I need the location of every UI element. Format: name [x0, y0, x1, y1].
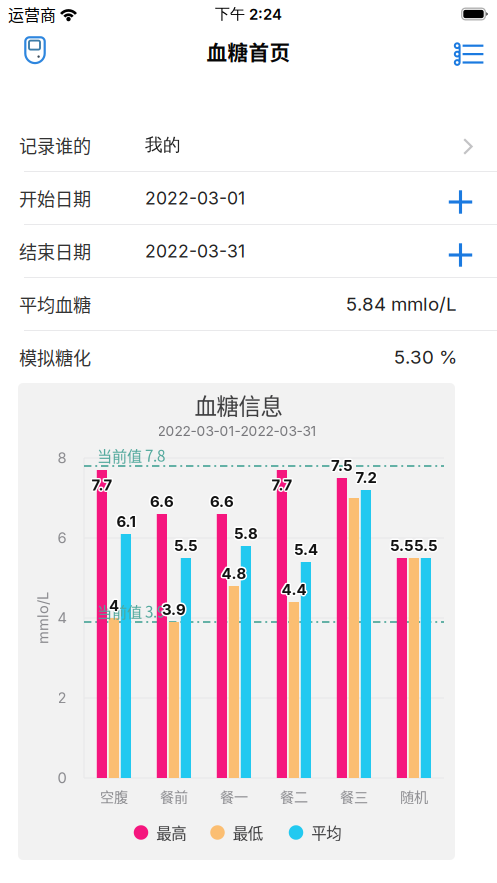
staticText: 3.9	[161, 599, 185, 617]
staticText: 4	[57, 609, 66, 627]
staticText: 下午 2:24	[215, 5, 282, 23]
staticText: 模拟糖化	[19, 344, 91, 370]
staticText: 餐三	[340, 786, 368, 806]
staticText: 随机	[400, 786, 428, 806]
staticText: 6.6	[151, 492, 175, 511]
staticText: 4	[107, 596, 117, 615]
staticText: 我的	[145, 134, 181, 156]
staticText: 6.6	[210, 491, 234, 509]
staticText: 7.7	[92, 475, 113, 493]
staticText: 6.6	[150, 492, 174, 511]
staticText: 7.7	[270, 476, 291, 494]
staticText: 4.4	[282, 579, 307, 597]
staticText: 3.9	[162, 602, 186, 620]
staticText: 7.5	[330, 455, 352, 473]
staticText: 5.5	[390, 536, 414, 555]
staticText: 7.7	[271, 474, 292, 493]
staticText: 记录谁的	[19, 132, 91, 158]
staticText: 6.6	[150, 491, 174, 509]
staticText: 5.8	[235, 525, 259, 544]
button[interactable]: 选择结束日期	[442, 234, 473, 267]
staticText: 4.8	[221, 563, 246, 581]
staticText: 5.4	[293, 539, 317, 557]
staticText: 4.4	[280, 579, 305, 597]
staticText: 5.5	[173, 537, 197, 556]
staticText: 5.8	[234, 526, 258, 544]
staticText: 当前值 3.9	[97, 600, 165, 622]
staticText: 结束日期	[19, 238, 91, 264]
staticText: 4.4	[280, 580, 305, 599]
staticText: 6.1	[115, 513, 134, 532]
staticText: 7.2	[356, 467, 377, 485]
staticText: 6.1	[118, 512, 137, 531]
staticText: 6.6	[211, 493, 235, 512]
button[interactable]: 选择记录对象	[455, 135, 473, 155]
staticText: 5.8	[233, 523, 257, 541]
staticText: 5.5	[415, 537, 439, 556]
staticText: 7.7	[90, 475, 111, 493]
staticText: 2022-03-01-2022-03-31	[157, 423, 316, 439]
staticText: 6.6	[149, 491, 173, 509]
staticText: 7.7	[272, 475, 293, 493]
staticText: 4.8	[220, 565, 245, 584]
staticText: 5.5	[175, 535, 199, 553]
staticText: 4	[109, 596, 119, 615]
staticText: 6.6	[151, 491, 175, 509]
staticText: 7.7	[90, 476, 111, 494]
staticText: 5.84 mmlo/L	[346, 293, 457, 315]
staticText: 5.5	[175, 536, 199, 555]
staticText: 5.5	[391, 536, 415, 555]
staticText: 3.9	[161, 601, 185, 620]
staticText: 5.5	[414, 538, 438, 556]
staticText: 5.4	[294, 540, 318, 559]
staticText: 5.5	[390, 538, 414, 556]
button[interactable]: 血糖仪	[0, 28, 60, 80]
staticText: 6.6	[209, 493, 233, 512]
staticText: 运营商	[8, 2, 56, 26]
staticText: 5.5	[388, 536, 412, 555]
staticText: 7.5	[331, 458, 353, 476]
staticText: 5.5	[413, 535, 437, 553]
staticText: 7.2	[357, 468, 378, 487]
button[interactable]: 选择开始日期	[442, 181, 473, 214]
staticText: 7.5	[331, 456, 353, 475]
button[interactable]: 记录列表	[440, 28, 497, 80]
staticText: 3.9	[163, 601, 187, 620]
staticText: 最低	[233, 821, 263, 844]
staticText: 7.2	[354, 468, 375, 487]
staticText: 餐前	[160, 786, 188, 806]
staticText: 2022-03-01	[145, 187, 245, 209]
staticText: 5.5	[174, 535, 198, 553]
staticText: 8	[57, 449, 66, 467]
staticText: 5.4	[295, 539, 319, 557]
staticText: 5.5	[389, 535, 413, 553]
staticText: 6.1	[115, 512, 134, 531]
staticText: 4.8	[223, 564, 248, 583]
staticText: 5.5	[413, 537, 437, 556]
staticText: 7.5	[332, 457, 354, 476]
staticText: 7.7	[92, 477, 113, 495]
staticText: 4.8	[220, 564, 245, 583]
staticText: 5.5	[415, 535, 439, 553]
staticText: 7.7	[91, 476, 112, 494]
staticText: 5.8	[234, 524, 258, 543]
staticText: 5.8	[235, 523, 259, 541]
staticText: 4	[108, 595, 118, 613]
staticText: 7.2	[355, 467, 376, 485]
staticText: 餐二	[280, 786, 308, 806]
staticText: 5.4	[294, 539, 318, 557]
staticText: 6.6	[211, 491, 235, 509]
staticText: 5.30 %	[394, 346, 457, 368]
staticText: 餐一	[220, 786, 248, 806]
staticText: 4.8	[221, 564, 246, 583]
staticText: 2022-03-31	[145, 240, 245, 262]
staticText: 5.5	[391, 537, 415, 556]
staticText: 7.2	[354, 467, 375, 485]
staticText: 7.7	[273, 476, 294, 494]
staticText: 5.5	[174, 538, 198, 556]
staticText: 7.2	[355, 470, 376, 488]
staticText: 平均血糖	[19, 291, 91, 317]
staticText: 6.6	[148, 492, 172, 511]
staticText: 4.4	[281, 580, 306, 599]
staticText: 7.7	[270, 475, 291, 493]
